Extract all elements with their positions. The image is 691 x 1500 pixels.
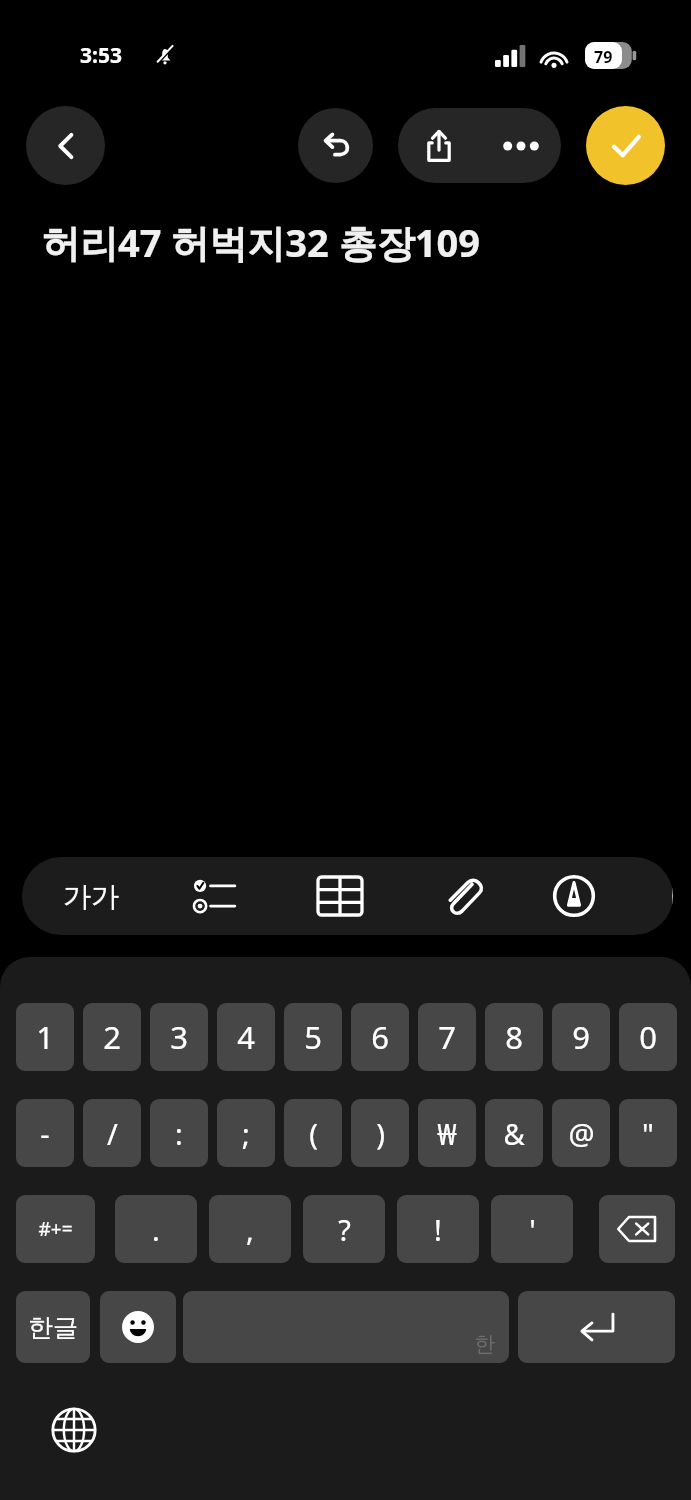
- staticText: 3: [170, 1016, 188, 1058]
- button[interactable]: 1: [16, 1003, 74, 1071]
- staticText: B: [670, 876, 673, 917]
- staticText: 7: [438, 1016, 456, 1058]
- button[interactable]: 한글: [16, 1291, 90, 1363]
- button[interactable]: 0: [619, 1003, 677, 1071]
- staticText: 1: [36, 1016, 54, 1058]
- staticText: 79: [594, 46, 613, 68]
- staticText: ?: [338, 1210, 351, 1249]
- button[interactable]: @: [552, 1099, 610, 1167]
- staticText: 한: [474, 1331, 495, 1357]
- button[interactable]: 9: [552, 1003, 610, 1071]
- staticText: 8: [505, 1016, 523, 1058]
- button[interactable]: (: [284, 1099, 342, 1167]
- staticText: 2: [103, 1016, 121, 1058]
- button[interactable]: -: [16, 1099, 74, 1167]
- button[interactable]: 2: [83, 1003, 141, 1071]
- button[interactable]: #+=: [16, 1195, 95, 1263]
- staticText: 5: [304, 1016, 322, 1058]
- button[interactable]: Markup: [519, 857, 629, 935]
- staticText: -: [40, 1114, 50, 1153]
- button[interactable]: Undo: [298, 108, 373, 183]
- button[interactable]: ): [351, 1099, 409, 1167]
- staticText: @: [568, 1114, 595, 1153]
- button[interactable]: !: [397, 1195, 479, 1263]
- button[interactable]: /: [83, 1099, 141, 1167]
- button[interactable]: 6: [351, 1003, 409, 1071]
- button[interactable]: ?: [303, 1195, 385, 1263]
- staticText: 한글: [28, 1312, 78, 1343]
- button[interactable]: 4: [217, 1003, 275, 1071]
- staticText: &: [503, 1114, 525, 1153]
- staticText: (: [309, 1114, 318, 1153]
- staticText: /: [107, 1114, 118, 1153]
- button[interactable]: Done: [586, 106, 665, 185]
- staticText: 4: [237, 1016, 255, 1058]
- button[interactable]: Back: [26, 106, 105, 185]
- button[interactable]: ;: [217, 1099, 275, 1167]
- staticText: #+=: [38, 1216, 73, 1242]
- staticText: ": [642, 1114, 654, 1153]
- staticText: 허리47 허벅지32 총장109: [42, 216, 480, 268]
- button[interactable]: Emoji: [100, 1291, 176, 1363]
- button[interactable]: ": [619, 1099, 677, 1167]
- button[interactable]: Space: [183, 1291, 509, 1363]
- button[interactable]: Enter: [518, 1291, 675, 1363]
- button[interactable]: Attach: [407, 857, 517, 935]
- staticText: 6: [371, 1016, 389, 1058]
- staticText: ': [529, 1210, 536, 1249]
- button[interactable]: Backspace: [599, 1195, 675, 1263]
- button[interactable]: &: [485, 1099, 543, 1167]
- staticText: !: [434, 1210, 442, 1249]
- button[interactable]: ₩: [418, 1099, 476, 1167]
- button[interactable]: ,: [209, 1195, 291, 1263]
- staticText: ,: [246, 1210, 254, 1249]
- staticText: 9: [572, 1016, 590, 1058]
- button[interactable]: More options: [480, 108, 561, 183]
- staticText: 0: [639, 1016, 657, 1058]
- button[interactable]: More formatting: [642, 857, 673, 935]
- button[interactable]: 5: [284, 1003, 342, 1071]
- staticText: ₩: [437, 1114, 457, 1153]
- button[interactable]: .: [115, 1195, 197, 1263]
- staticText: .: [152, 1210, 160, 1249]
- button[interactable]: Checklist: [160, 857, 270, 935]
- button[interactable]: 3: [150, 1003, 208, 1071]
- button[interactable]: Change keyboard language: [44, 1400, 104, 1460]
- button[interactable]: Table: [285, 857, 395, 935]
- button[interactable]: 가가: [36, 857, 146, 935]
- button[interactable]: 7: [418, 1003, 476, 1071]
- button[interactable]: :: [150, 1099, 208, 1167]
- button[interactable]: 8: [485, 1003, 543, 1071]
- staticText: ;: [242, 1114, 250, 1153]
- staticText: ): [376, 1114, 385, 1153]
- staticText: 3:53: [80, 41, 122, 70]
- staticText: 가가: [63, 879, 119, 914]
- staticText: :: [175, 1114, 183, 1153]
- button[interactable]: Share: [398, 108, 480, 183]
- button[interactable]: ': [491, 1195, 573, 1263]
